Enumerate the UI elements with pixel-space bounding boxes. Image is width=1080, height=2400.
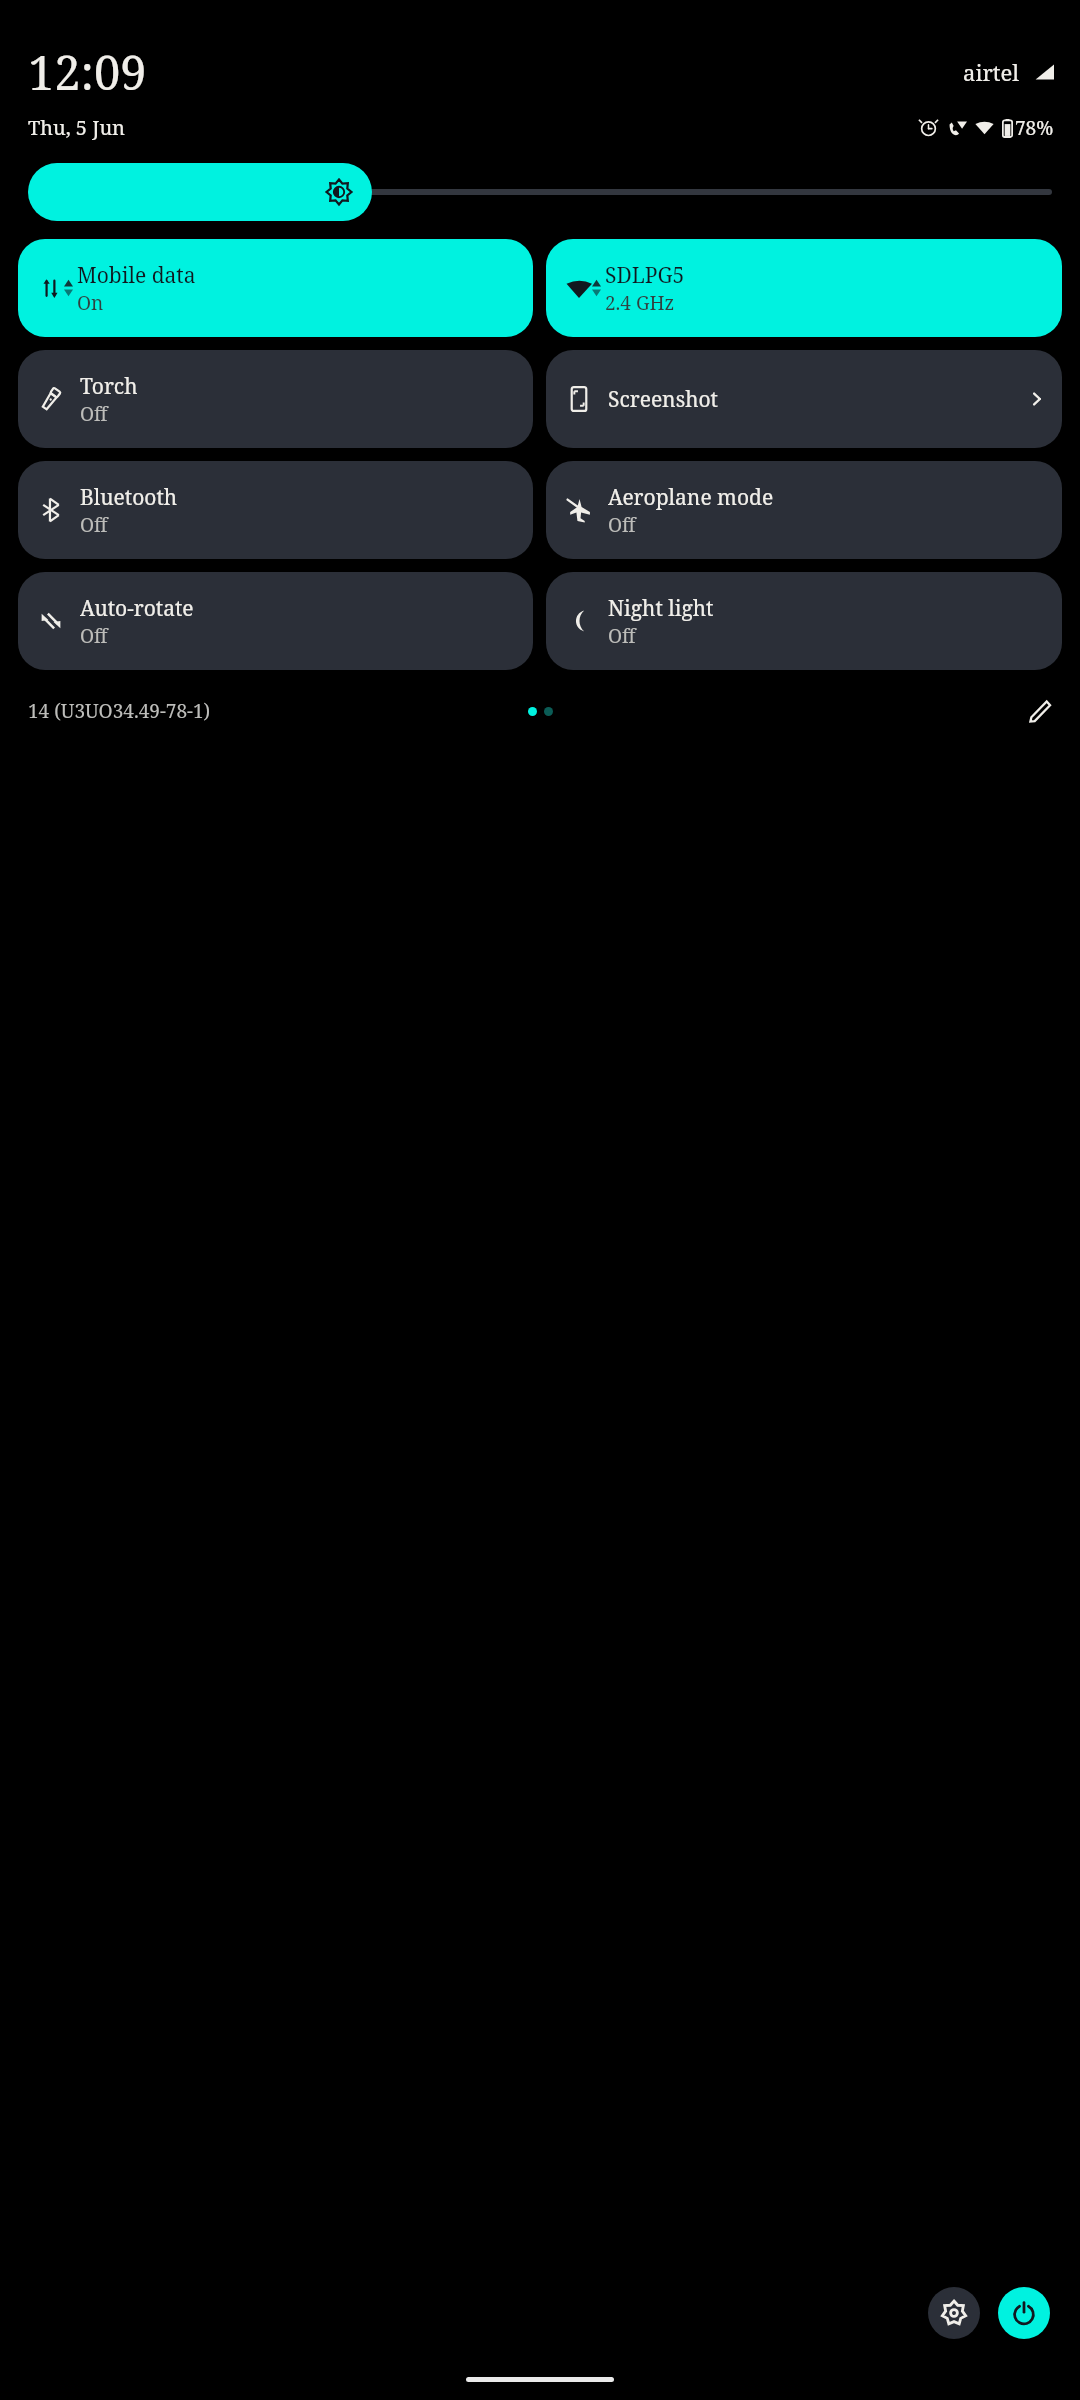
staticText: Off bbox=[80, 512, 108, 538]
button[interactable] bbox=[14, 163, 1066, 221]
staticText: Off bbox=[80, 623, 108, 649]
button[interactable]: Mobile data bbox=[18, 239, 533, 337]
staticText: 78% bbox=[1015, 115, 1054, 141]
staticText: Off bbox=[80, 401, 108, 427]
staticText: On bbox=[77, 290, 104, 316]
staticText: airtel bbox=[963, 57, 1020, 87]
button[interactable]: Power bbox=[998, 2287, 1050, 2339]
staticText: Off bbox=[608, 623, 636, 649]
button[interactable]: SDLPG5 bbox=[546, 239, 1062, 337]
staticText: Screenshot bbox=[608, 385, 718, 414]
staticText: 14 (U3UO34.49-78-1) bbox=[28, 698, 211, 724]
button[interactable]: Auto-rotate bbox=[18, 572, 533, 670]
staticText: Thu, 5 Jun bbox=[28, 114, 125, 141]
staticText: Torch bbox=[80, 372, 138, 401]
staticText: Aeroplane mode bbox=[608, 483, 774, 512]
staticText: Mobile data bbox=[77, 261, 196, 290]
button[interactable]: Edit tiles bbox=[1018, 689, 1062, 733]
staticText: Bluetooth bbox=[80, 483, 178, 512]
staticText: 2.4 GHz bbox=[605, 290, 675, 316]
button[interactable]: Night light bbox=[546, 572, 1062, 670]
staticText: 12:09 bbox=[28, 40, 147, 104]
staticText: SDLPG5 bbox=[605, 261, 685, 290]
button[interactable]: Torch bbox=[18, 350, 533, 448]
button[interactable]: Aeroplane mode bbox=[546, 461, 1062, 559]
staticText: Night light bbox=[608, 594, 714, 623]
staticText: Auto-rotate bbox=[80, 594, 194, 623]
staticText: Off bbox=[608, 512, 636, 538]
button[interactable]: Screenshot bbox=[546, 350, 1062, 448]
button[interactable]: Settings bbox=[928, 2287, 980, 2339]
button[interactable]: Bluetooth bbox=[18, 461, 533, 559]
